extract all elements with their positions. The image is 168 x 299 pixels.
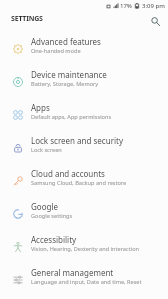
staticText: Default apps, App permissions — [31, 113, 112, 121]
button[interactable]: Cloud and accounts — [0, 162, 168, 195]
staticText: Device maintenance — [31, 69, 107, 80]
staticText: General management — [31, 267, 114, 278]
button[interactable]: General management — [0, 261, 168, 294]
button[interactable]: Lock screen and security — [0, 129, 168, 162]
staticText: Apps — [31, 102, 50, 113]
button[interactable]: Search — [148, 14, 162, 28]
staticText: Accessibility — [31, 234, 77, 245]
staticText: Lock screen — [31, 146, 62, 154]
staticText: SETTINGS — [11, 14, 43, 24]
staticText: 17% — [120, 2, 132, 10]
staticText: Lock screen and security — [31, 135, 123, 146]
staticText: Advanced features — [31, 36, 101, 47]
staticText: Samsung Cloud, Backup and restore — [31, 179, 127, 187]
staticText: One-handed mode — [31, 47, 81, 55]
button[interactable]: Google — [0, 195, 168, 228]
button[interactable]: Device maintenance — [0, 63, 168, 96]
staticText: Language and input, Date and time, Reset — [31, 278, 142, 286]
button[interactable]: Accessibility — [0, 228, 168, 261]
button[interactable]: Apps — [0, 96, 168, 129]
staticText: Cloud and accounts — [31, 168, 105, 179]
staticText: Google settings — [31, 212, 73, 220]
staticText: Google — [31, 201, 58, 212]
staticText: Battery, Storage, Memory — [31, 80, 99, 88]
staticText: Vision, Hearing, Dexterity and interacti… — [31, 245, 139, 253]
button[interactable]: Advanced features — [0, 30, 168, 63]
staticText: 3:09 pm — [142, 2, 165, 10]
